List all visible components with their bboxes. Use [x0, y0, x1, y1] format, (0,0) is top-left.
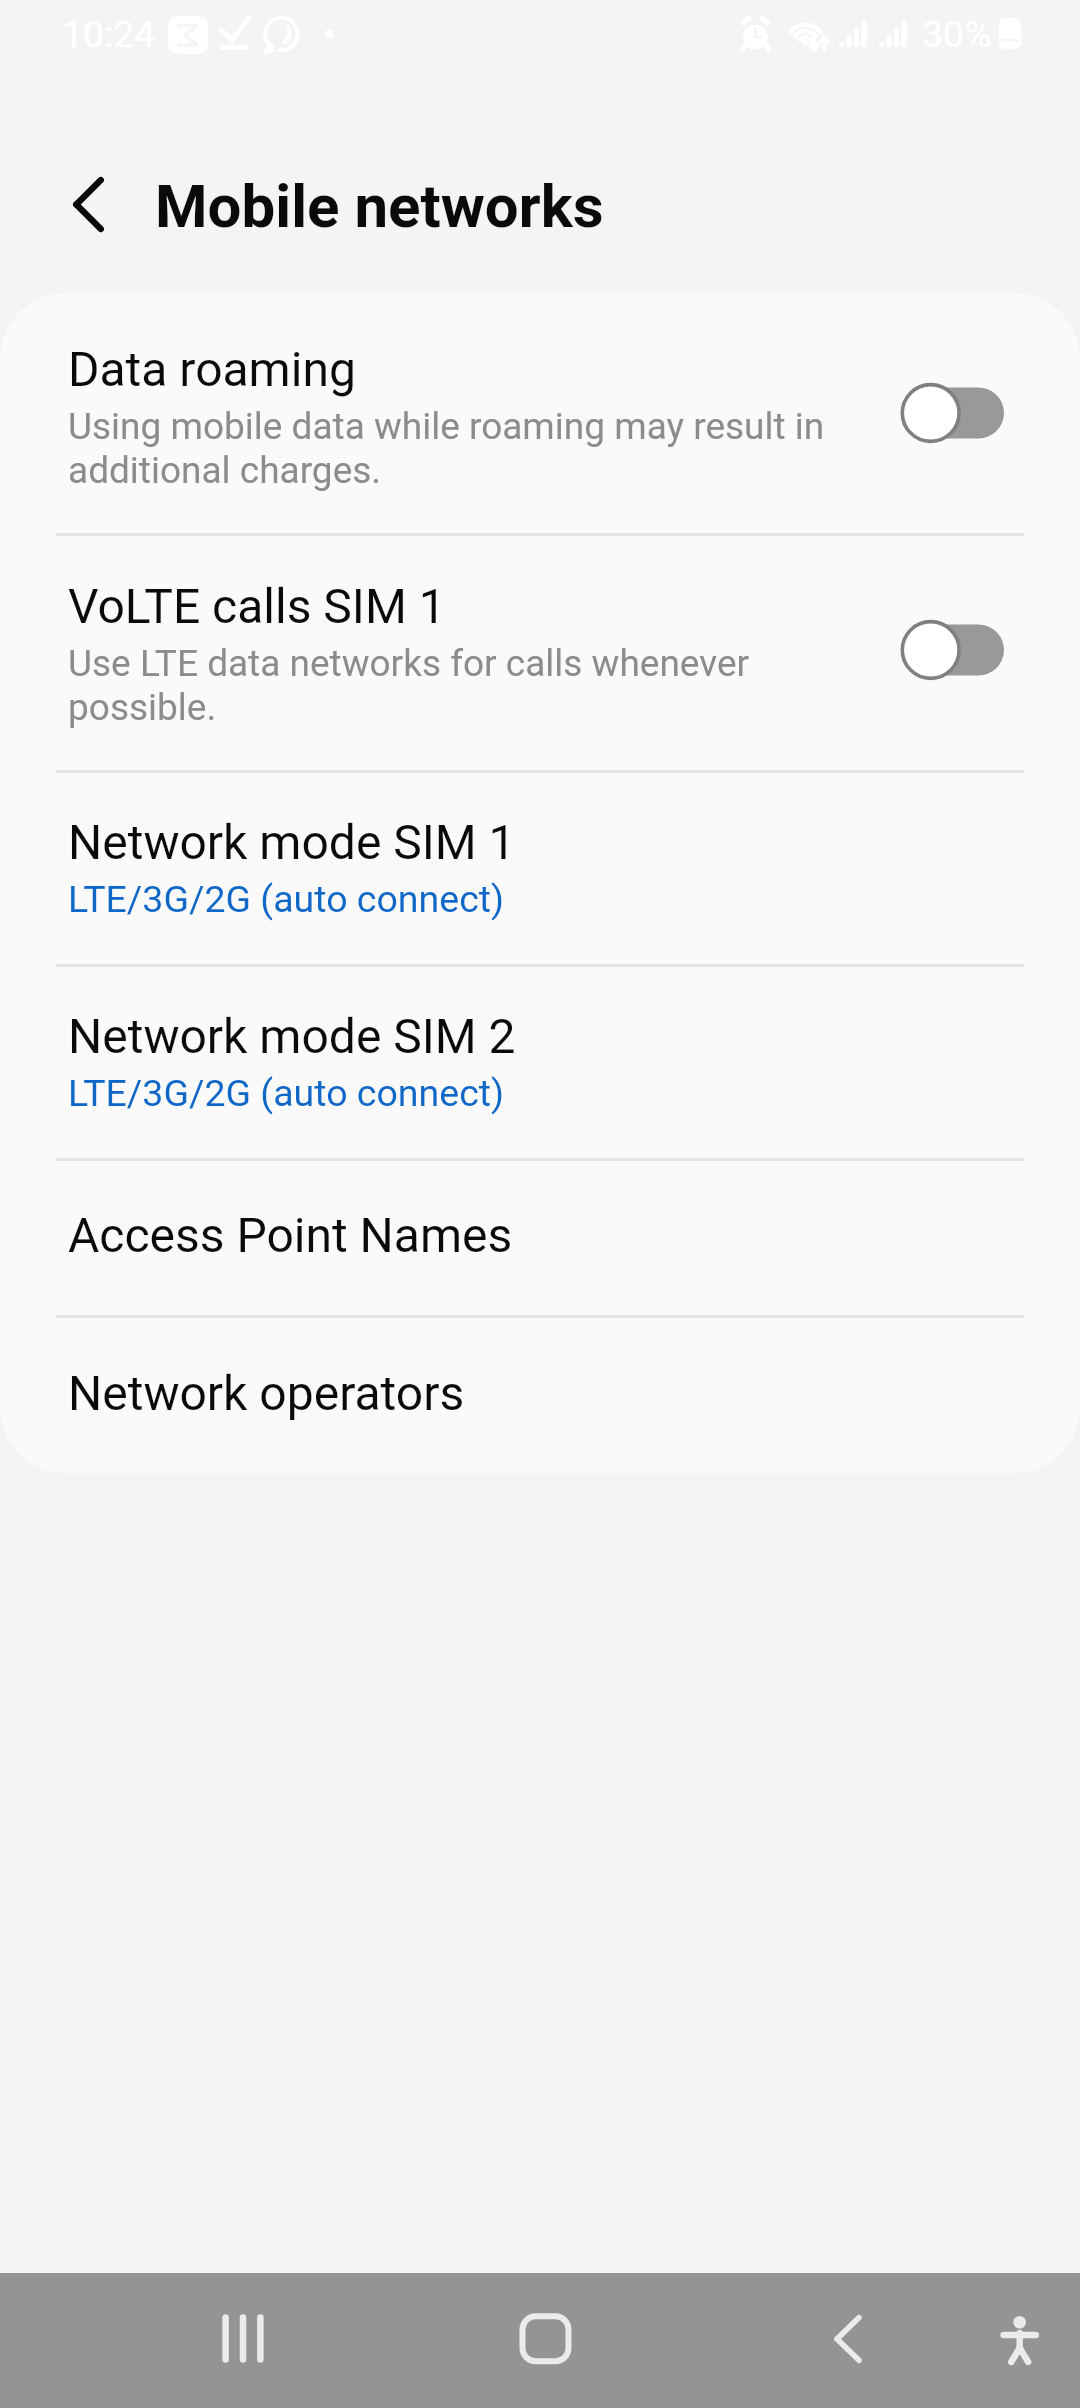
button[interactable]: Back [788, 2273, 908, 2408]
button[interactable]: Home [485, 2273, 605, 2408]
staticText: Network operators [68, 1365, 465, 1421]
button[interactable]: Accessibility [960, 2273, 1080, 2408]
staticText: Use LTE data networks for calls whenever… [68, 642, 750, 729]
staticText: 30% [922, 12, 992, 56]
button[interactable]: Turn on VoLTE calls SIM 1 [897, 618, 1007, 682]
staticText: Network mode SIM 2 [68, 1008, 516, 1064]
button[interactable]: Network operators [0, 1318, 1080, 1473]
button[interactable]: VoLTE calls SIM 1 [0, 536, 1080, 770]
staticText: Data roaming [68, 341, 356, 397]
staticText: 10:24 [62, 12, 156, 56]
button[interactable]: Recent apps [183, 2273, 303, 2408]
staticText: LTE/3G/2G (auto connect) [68, 877, 505, 921]
button[interactable]: Access Point Names [0, 1161, 1080, 1315]
staticText: Using mobile data while roaming may resu… [68, 405, 825, 492]
staticText: Network mode SIM 1 [68, 814, 516, 870]
staticText: Mobile networks [155, 171, 604, 241]
button[interactable]: Navigate up [36, 165, 116, 245]
staticText: Access Point Names [68, 1207, 513, 1263]
button[interactable]: Network mode SIM 2 [0, 967, 1080, 1158]
button[interactable]: Network mode SIM 1 [0, 773, 1080, 964]
button[interactable]: Data roaming [0, 299, 1080, 533]
staticText: LTE/3G/2G (auto connect) [68, 1071, 505, 1115]
button[interactable]: Turn on Data roaming [897, 381, 1007, 445]
staticText: VoLTE calls SIM 1 [68, 578, 446, 634]
